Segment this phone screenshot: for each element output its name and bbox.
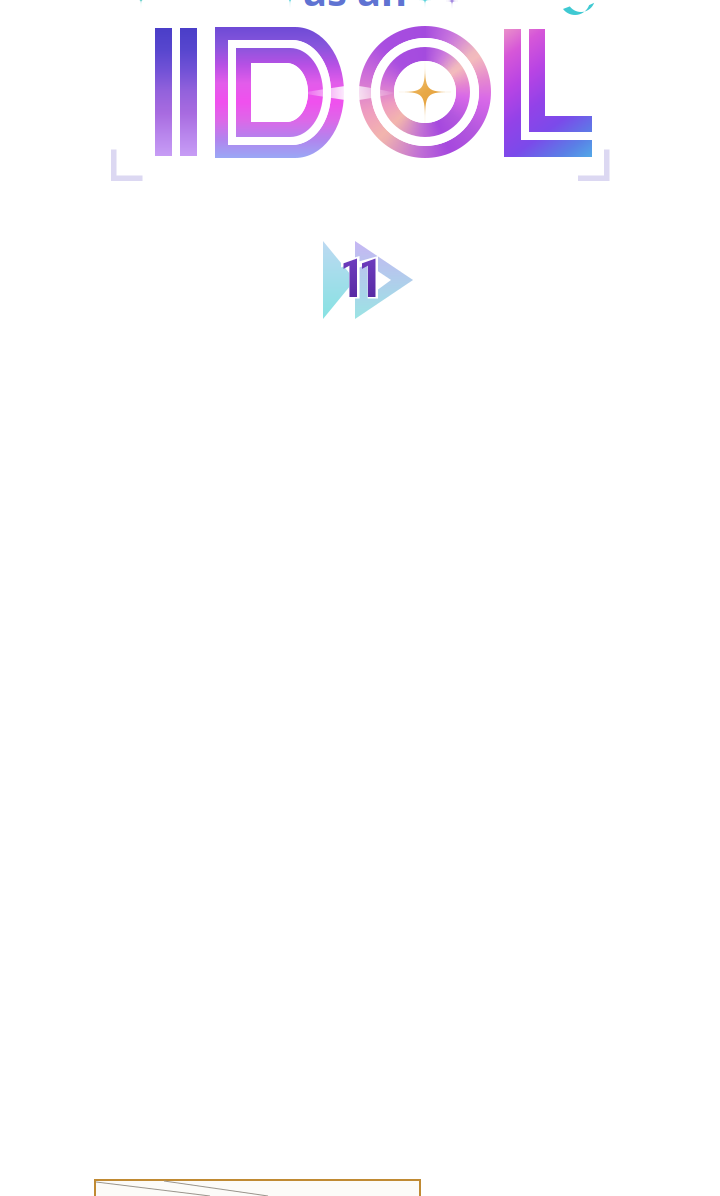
staticText: as an [303, 0, 407, 17]
